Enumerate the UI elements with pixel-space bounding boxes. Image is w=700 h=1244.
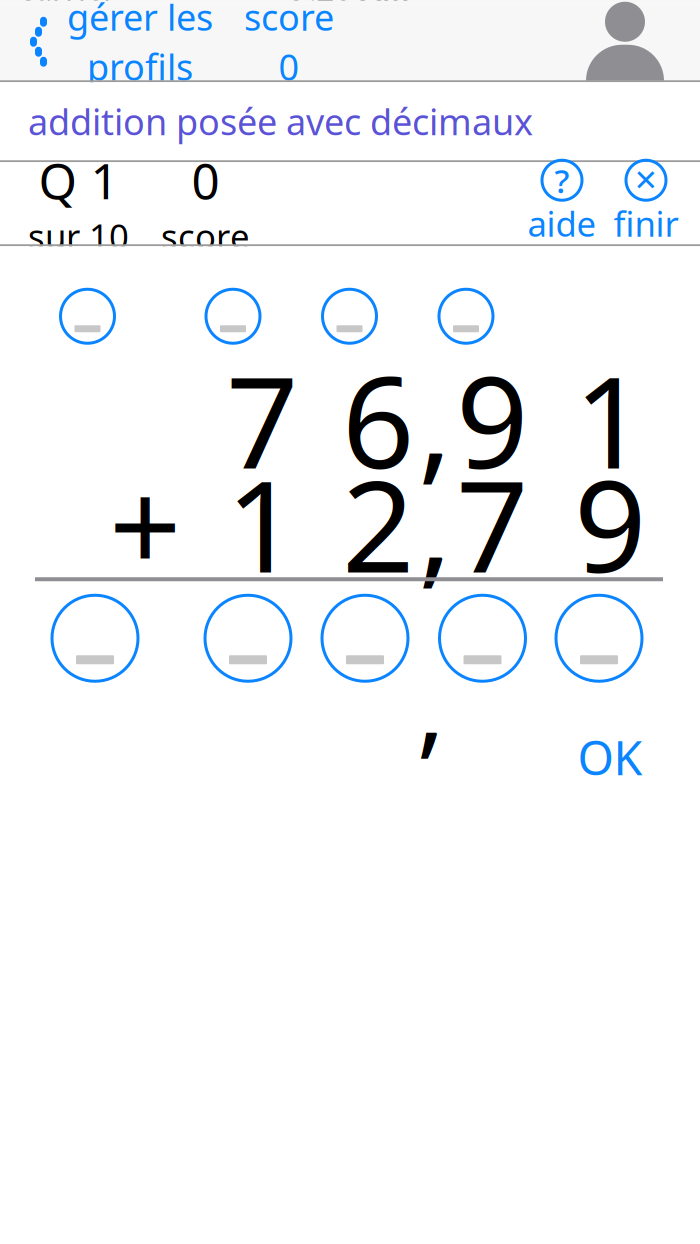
staticText: Carrier <box>16 0 116 9</box>
staticText: , <box>418 335 452 503</box>
staticText <box>128 335 161 503</box>
button[interactable]: score <box>214 3 364 80</box>
staticText: 9:28 AM <box>290 0 409 9</box>
staticText: 2 <box>342 439 414 607</box>
staticText: 9 <box>574 439 646 607</box>
staticText: 0 <box>278 43 299 91</box>
staticText: + <box>109 439 181 607</box>
button[interactable]: ? <box>520 162 604 244</box>
button[interactable]: Retenue 3 <box>320 287 378 345</box>
button[interactable]: ✕ <box>604 162 688 244</box>
staticText: finir <box>613 200 678 246</box>
button[interactable]: Chiffre 1 <box>50 593 140 683</box>
staticText: sur 10 <box>28 213 129 259</box>
staticText: 7 <box>456 439 528 607</box>
staticText: gérer les <box>67 0 213 41</box>
staticText: , <box>418 439 452 607</box>
staticText: OK <box>577 726 642 788</box>
staticText: score <box>161 213 250 259</box>
button[interactable]: gérer les <box>66 3 214 80</box>
staticText: Q 1 <box>38 147 118 213</box>
button[interactable]: Chiffre 4 <box>437 593 527 683</box>
button[interactable]: Retour <box>0 3 66 80</box>
staticText: 1 <box>574 335 646 503</box>
button[interactable]: Chiffre 3 <box>320 593 410 683</box>
staticText: , <box>416 632 445 774</box>
staticText: ? <box>554 158 569 202</box>
button[interactable]: Retenue 2 <box>204 287 262 345</box>
button[interactable]: Chiffre 5 <box>554 593 644 683</box>
staticText: score <box>244 0 334 41</box>
button[interactable]: OK <box>562 729 658 785</box>
staticText: aide <box>527 200 596 246</box>
button[interactable]: Chiffre 2 <box>203 593 293 683</box>
staticText: ✕ <box>633 164 658 197</box>
button[interactable]: Retenue 4 <box>437 287 495 345</box>
button[interactable]: Retenue 1 <box>58 287 116 345</box>
button[interactable]: Profil <box>550 3 700 80</box>
staticText: 7 <box>226 335 298 503</box>
staticText: addition posée avec décimaux <box>28 97 533 145</box>
staticText: 0 <box>191 147 219 213</box>
staticText: 1 <box>226 439 298 607</box>
staticText: 9 <box>456 335 528 503</box>
staticText: 6 <box>342 335 414 503</box>
staticText: profils <box>87 43 193 91</box>
